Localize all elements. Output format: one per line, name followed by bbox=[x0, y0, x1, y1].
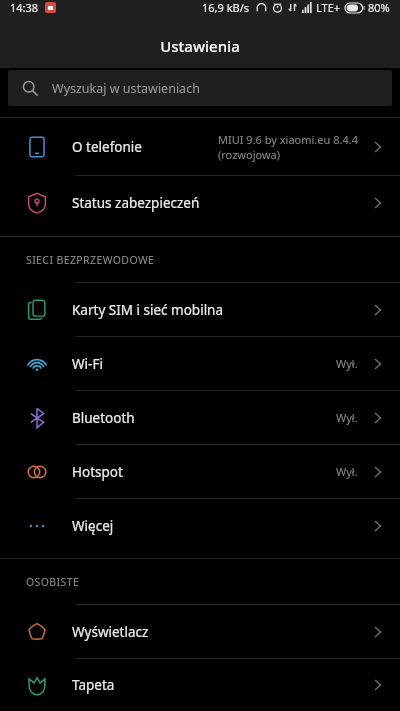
staticText: MIUI 9.6 by xiaomi.eu 8.4.4 (rozwojowa) bbox=[218, 132, 358, 162]
staticText: Wył. bbox=[336, 356, 358, 371]
button[interactable]: O telefonie bbox=[0, 118, 400, 175]
staticText: 14:38 bbox=[10, 0, 39, 15]
staticText: LTE+ bbox=[316, 0, 341, 15]
other: Otwórz Wyświetlacz bbox=[370, 624, 386, 640]
button[interactable]: Tapeta bbox=[0, 659, 400, 711]
staticText: Więcej bbox=[72, 517, 114, 535]
staticText: SIECI BEZPRZEWODOWE bbox=[26, 253, 155, 267]
other: Otwórz Wi-Fi bbox=[370, 356, 386, 372]
button[interactable]: Wyszukaj w ustawieniach bbox=[8, 70, 392, 106]
button[interactable]: Więcej bbox=[0, 499, 400, 552]
staticText: Hotspot bbox=[72, 463, 123, 481]
staticText: Status zabezpieczeń bbox=[72, 194, 200, 212]
other: Otwórz Hotspot bbox=[370, 464, 386, 480]
button[interactable]: Hotspot bbox=[0, 445, 400, 498]
staticText: Wył. bbox=[336, 464, 358, 479]
button[interactable]: Karty SIM i sieć mobilna bbox=[0, 283, 400, 336]
staticText: Tapeta bbox=[72, 676, 115, 694]
other: Otwórz Status zabezpieczeń bbox=[370, 195, 386, 211]
staticText: OSOBISTE bbox=[26, 575, 80, 589]
staticText: Wył. bbox=[336, 410, 358, 425]
button[interactable]: Wi-Fi bbox=[0, 337, 400, 390]
staticText: 16,9 kB/s bbox=[202, 0, 250, 15]
staticText: Ustawienia bbox=[160, 36, 240, 56]
staticText: O telefonie bbox=[72, 138, 142, 156]
staticText: Wyszukaj w ustawieniach bbox=[52, 80, 200, 97]
button[interactable]: Status zabezpieczeń bbox=[0, 176, 400, 230]
staticText: 80% bbox=[368, 0, 390, 15]
staticText: Wi-Fi bbox=[72, 355, 103, 373]
button[interactable]: Bluetooth bbox=[0, 391, 400, 444]
other: Otwórz Bluetooth bbox=[370, 410, 386, 426]
staticText: Karty SIM i sieć mobilna bbox=[72, 301, 224, 319]
staticText: Wyświetlacz bbox=[72, 623, 149, 641]
button[interactable]: Wyświetlacz bbox=[0, 605, 400, 658]
other: Otwórz Więcej bbox=[370, 518, 386, 534]
other: Otwórz Karty SIM i sieć mobilna bbox=[370, 302, 386, 318]
other: Otwórz O telefonie bbox=[370, 139, 386, 155]
other: Otwórz Tapeta bbox=[370, 677, 386, 693]
staticText: Bluetooth bbox=[72, 409, 135, 427]
